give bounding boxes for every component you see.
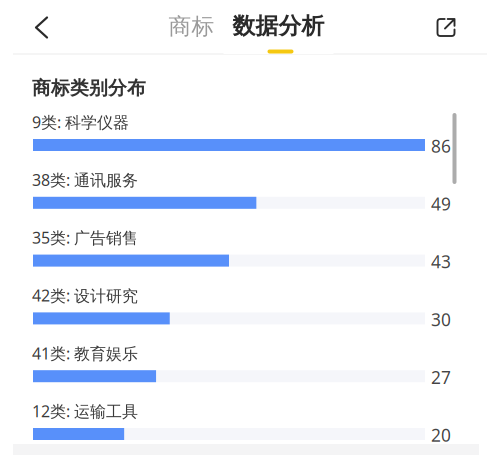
staticText: 42类: 设计研究: [32, 285, 138, 306]
staticText: 12类: 运输工具: [32, 400, 138, 422]
button[interactable]: 数据分析: [223, 0, 333, 54]
staticText: 35类: 广告销售: [32, 227, 138, 248]
staticText: 20: [431, 423, 451, 446]
staticText: 41类: 教育娱乐: [32, 343, 138, 364]
staticText: 38类: 通讯服务: [32, 169, 138, 190]
staticText: 9类: 科学仪器: [32, 111, 129, 133]
staticText: 43: [431, 250, 451, 273]
staticText: 86: [431, 134, 451, 157]
button[interactable]: 商标: [159, 1, 223, 52]
staticText: 数据分析: [232, 12, 324, 40]
staticText: 商标: [168, 13, 214, 40]
button[interactable]: Back: [16, 3, 67, 51]
button[interactable]: Share: [417, 3, 474, 52]
staticText: 30: [431, 308, 451, 331]
staticText: 49: [431, 192, 451, 215]
staticText: 27: [431, 366, 451, 389]
staticText: 商标类别分布: [32, 76, 146, 99]
